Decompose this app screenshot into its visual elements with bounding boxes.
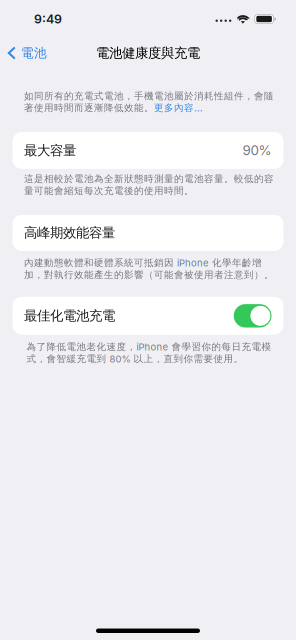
staticText: 電池 [21, 45, 47, 61]
staticText: 為了降低電池老化速度，iPhone 會學習你的每日充電模式，會智緩充電到 80%… [26, 341, 271, 365]
staticText: 如同所有的充電式電池，手機電池屬於消耗性組件，會隨著使用時間而逐漸降低效能。更多… [24, 90, 274, 114]
button[interactable]: 最佳化電池充電 [0, 297, 296, 335]
staticText: 最佳化電池充電 [24, 307, 115, 324]
staticText: 內建動態軟體和硬體系統可抵銷因 iPhone 化學年齡增加，對執行效能產生的影響… [24, 257, 274, 281]
staticText: 電池健康度與充電 [96, 45, 200, 61]
button[interactable]: 電池 [0, 40, 55, 66]
staticText: 90% [242, 142, 271, 158]
staticText: 9:49 [34, 11, 62, 26]
staticText: 最大容量 [24, 142, 76, 159]
staticText: 高峰期效能容量 [24, 224, 115, 241]
staticText: 這是相較於電池為全新狀態時測量的電池容量。較低的容量可能會縮短每次充電後的使用時… [24, 173, 274, 197]
